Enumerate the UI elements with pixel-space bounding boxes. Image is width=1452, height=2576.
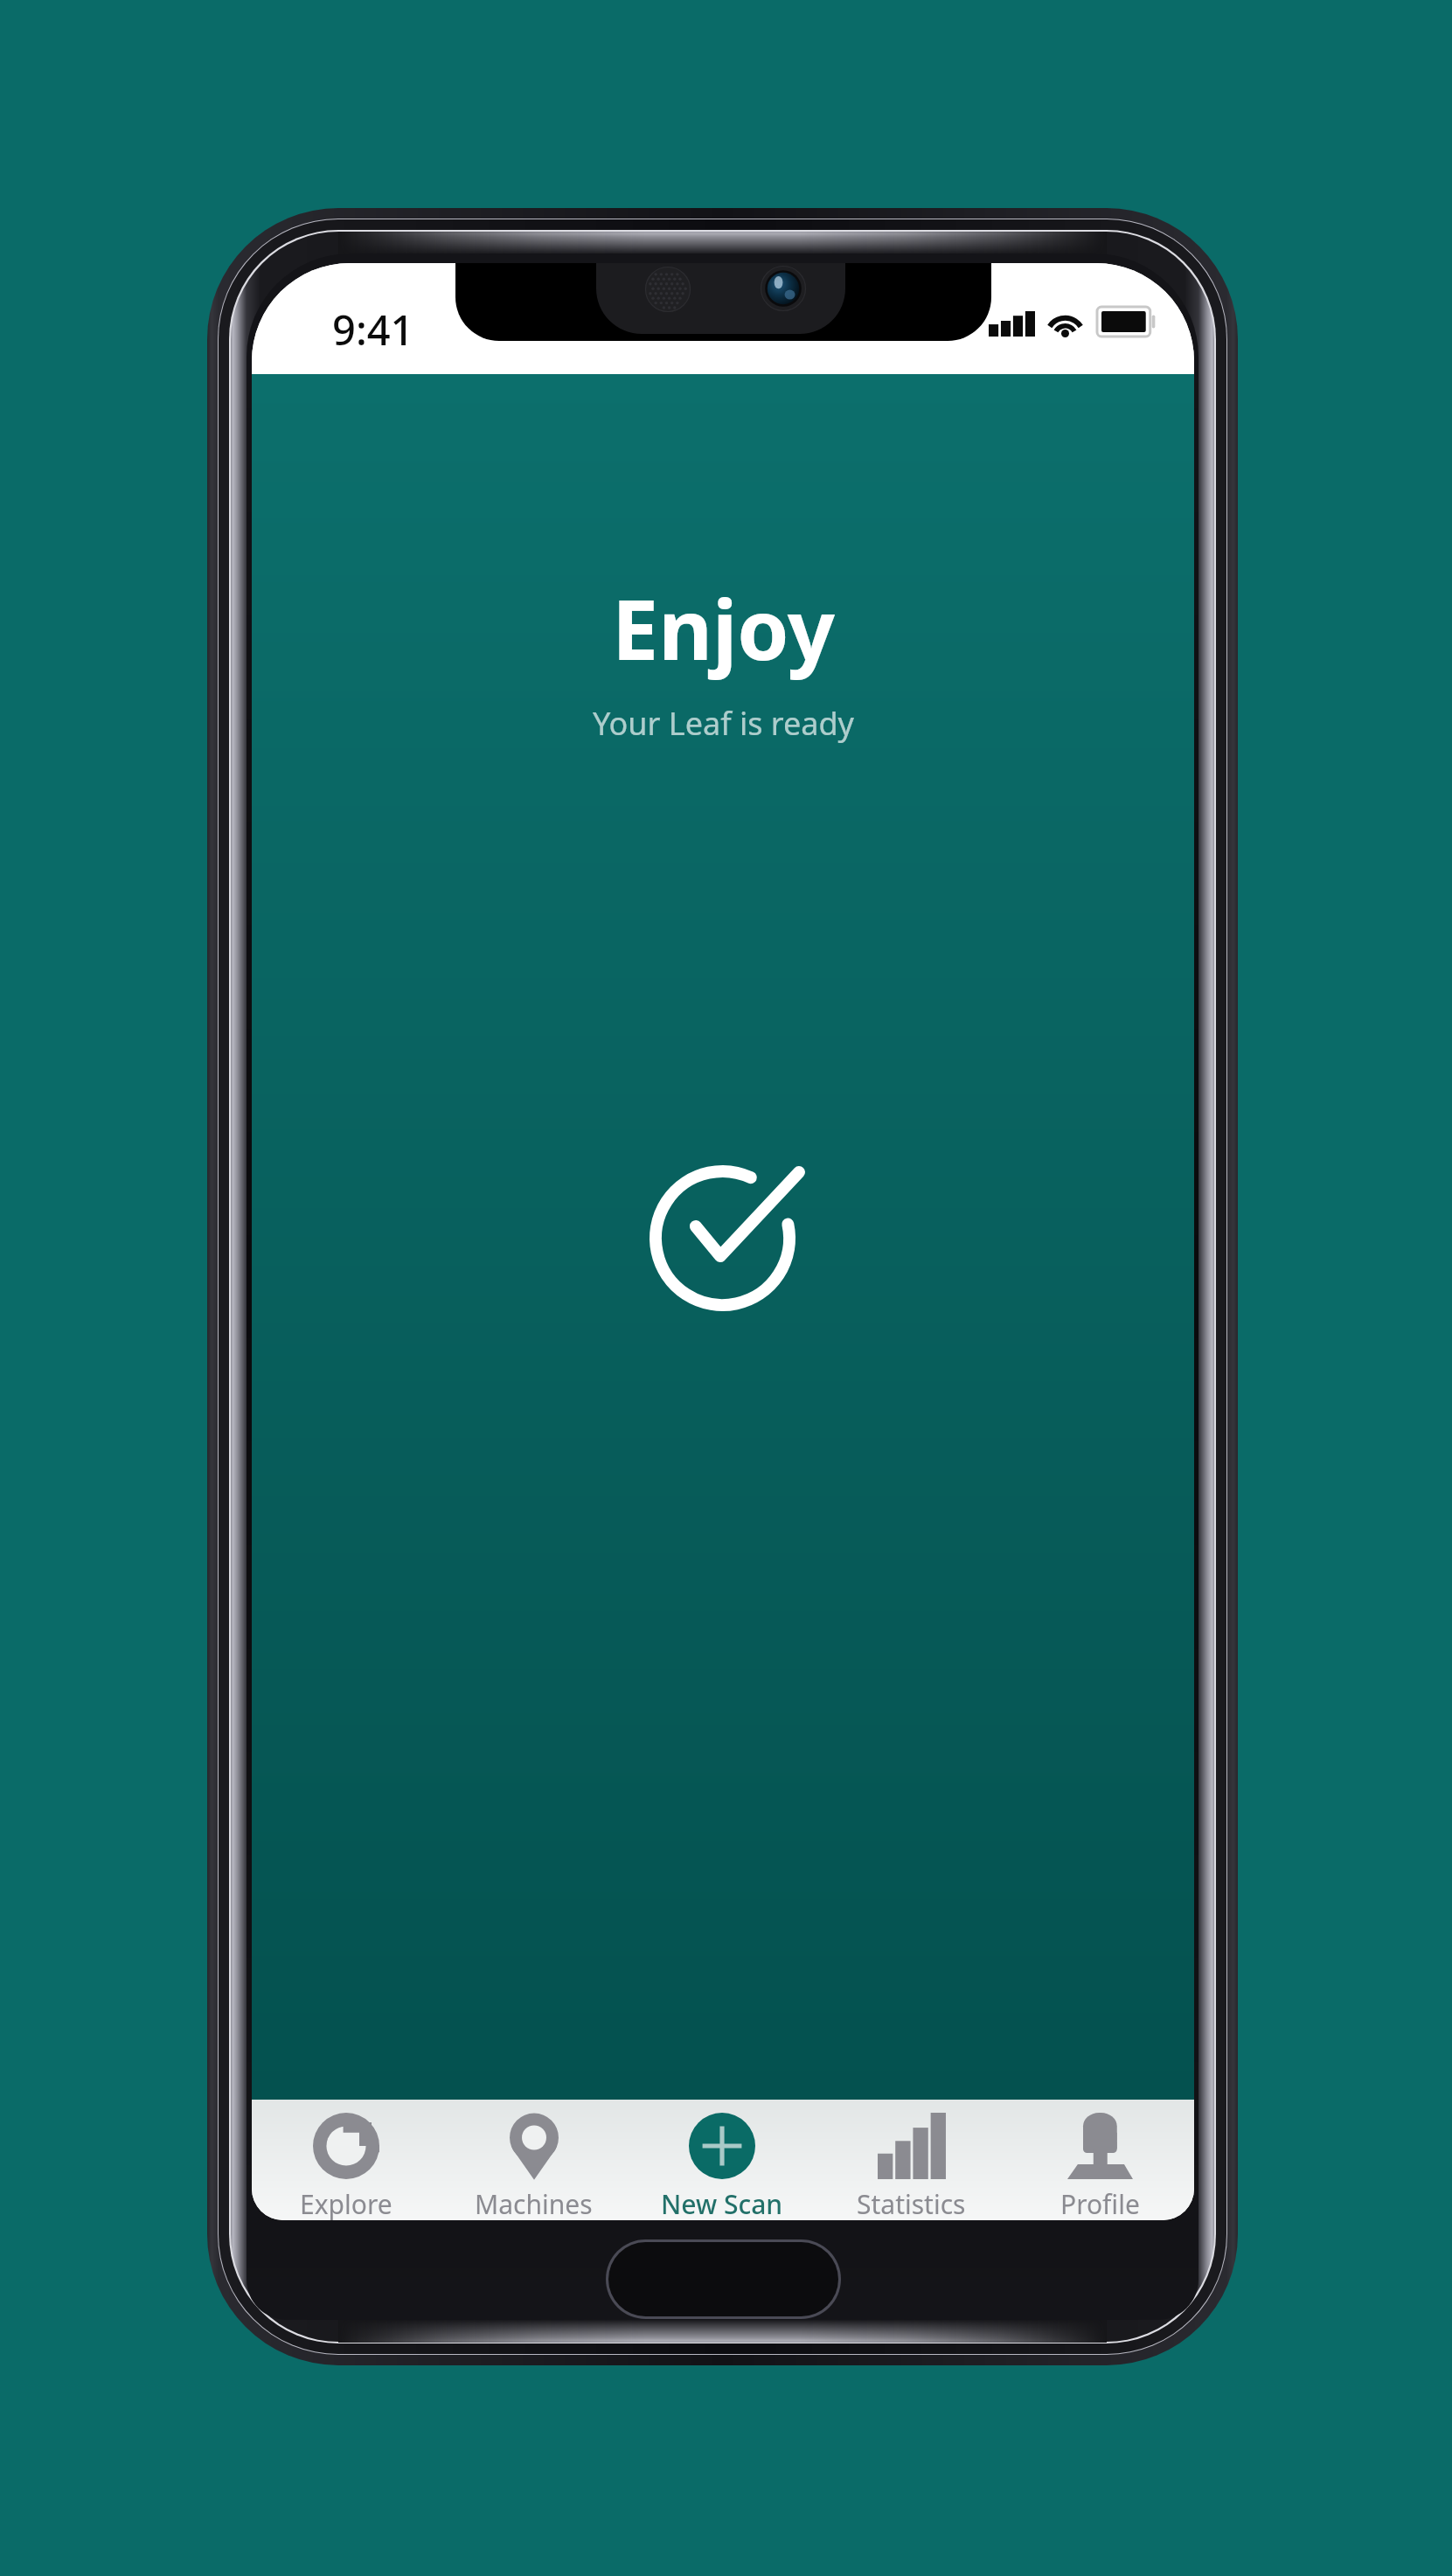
staticText: Profile: [1060, 2186, 1140, 2220]
other: Wi-Fi: [1046, 306, 1085, 337]
other: Signal strength: [989, 311, 1035, 337]
button[interactable]: Profile: [1005, 2100, 1194, 2220]
other: Machines: [501, 2113, 567, 2179]
button[interactable]: Statistics: [816, 2100, 1005, 2220]
other: Done: [650, 1165, 795, 1311]
staticText: Your Leaf is ready: [593, 702, 854, 745]
staticText: Enjoy: [612, 571, 835, 684]
staticText: New Scan: [661, 2186, 783, 2220]
other: Battery: [1097, 307, 1155, 337]
button[interactable]: New Scan: [628, 2100, 816, 2220]
other: Statistics: [878, 2113, 944, 2179]
staticText: 9:41: [332, 302, 414, 358]
staticText: Machines: [475, 2186, 593, 2220]
button[interactable]: Explore: [252, 2100, 440, 2220]
staticText: Statistics: [857, 2186, 966, 2220]
button[interactable]: Machines: [440, 2100, 628, 2220]
other: New Scan: [689, 2113, 755, 2179]
other: Profile: [1066, 2113, 1133, 2179]
other: Explore: [313, 2113, 379, 2179]
staticText: Explore: [300, 2186, 393, 2220]
